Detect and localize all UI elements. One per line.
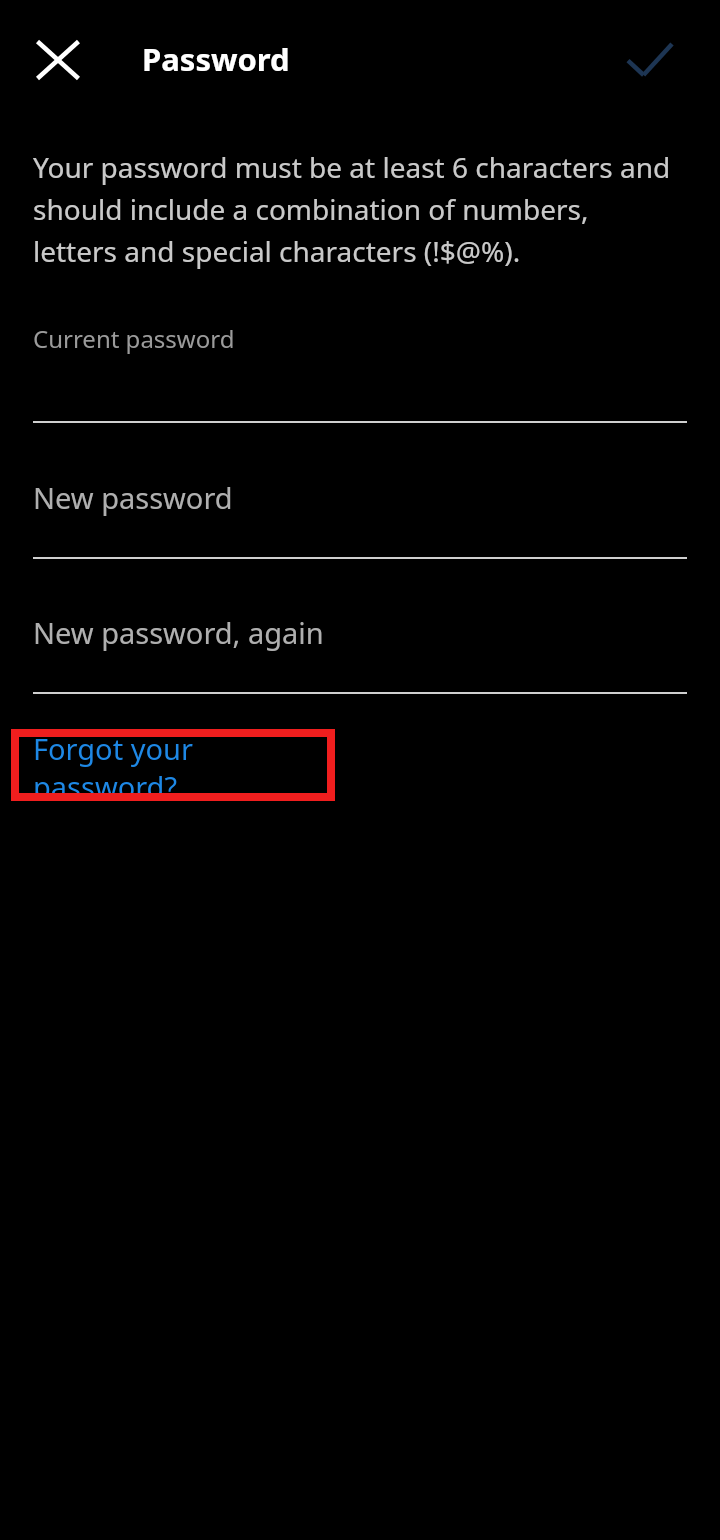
button[interactable]: New password — [33, 450, 687, 559]
button[interactable]: Forgot your password? — [11, 729, 335, 801]
staticText: Password — [142, 38, 290, 80]
button[interactable]: Current password — [33, 300, 687, 423]
staticText: Forgot your password? — [33, 729, 335, 801]
staticText: Current password — [33, 322, 235, 355]
button[interactable]: Confirm — [604, 36, 696, 84]
button[interactable]: Close — [12, 36, 104, 84]
staticText: Your password must be at least 6 charact… — [33, 148, 673, 270]
staticText: New password — [33, 478, 233, 517]
button[interactable]: New password, again — [33, 585, 687, 694]
staticText: New password, again — [33, 613, 324, 652]
